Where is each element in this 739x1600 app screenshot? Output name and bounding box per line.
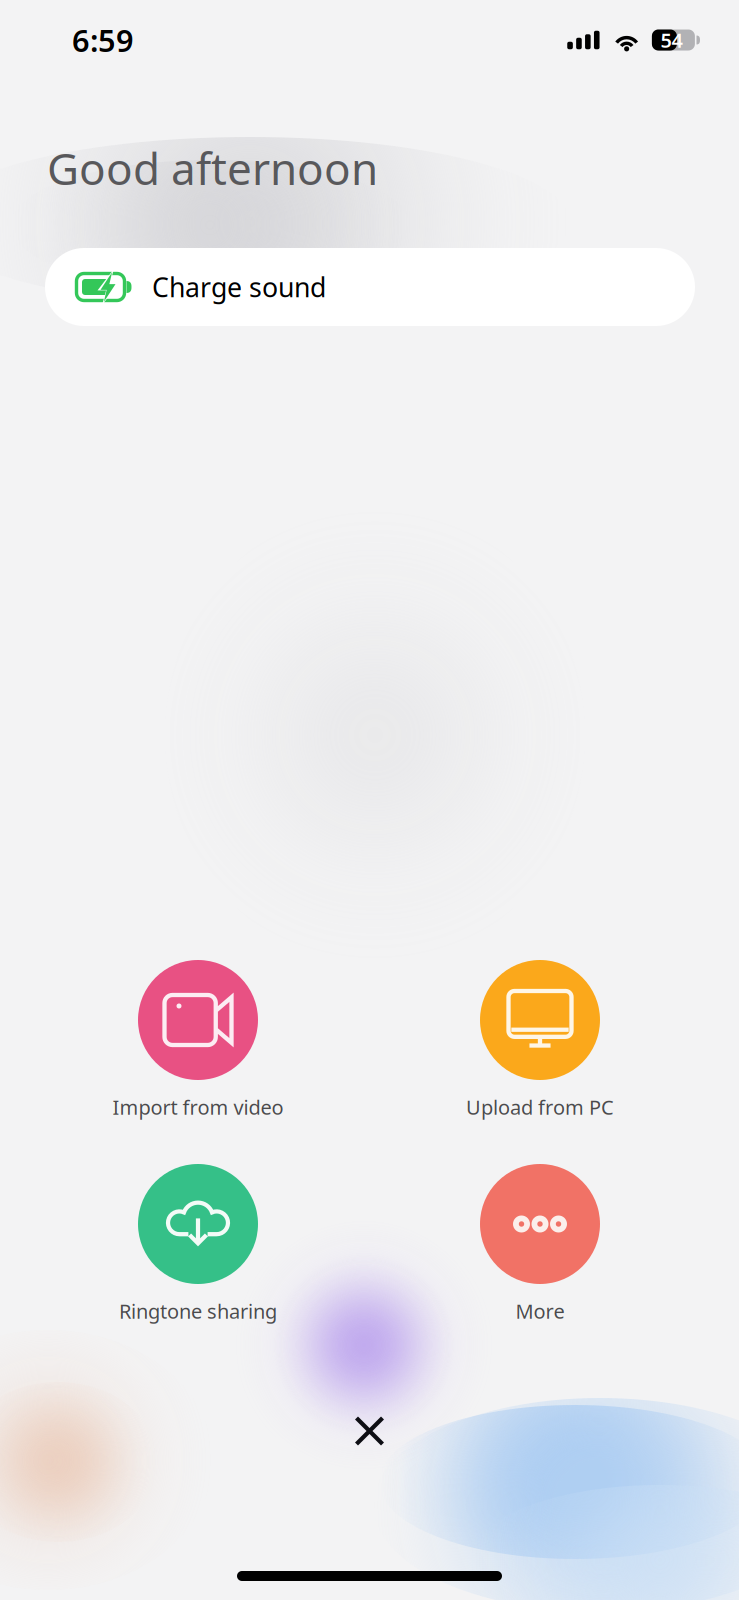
staticText: More bbox=[515, 1298, 564, 1324]
staticText: 6:59 bbox=[72, 20, 134, 60]
button[interactable]: Ringtone sharing bbox=[43, 1166, 353, 1324]
staticText: Upload from PC bbox=[466, 1094, 614, 1120]
staticText: Good afternoon bbox=[47, 139, 378, 197]
staticText: Import from video bbox=[112, 1094, 283, 1120]
button[interactable]: Import from video bbox=[43, 962, 353, 1120]
button[interactable]: Upload from PC bbox=[385, 962, 695, 1120]
button[interactable]: Close bbox=[330, 1392, 408, 1470]
button[interactable]: Charge sound bbox=[45, 248, 695, 326]
staticText: 54 bbox=[660, 27, 682, 53]
staticText: Charge sound bbox=[152, 269, 326, 305]
button[interactable]: More bbox=[385, 1166, 695, 1324]
staticText: Ringtone sharing bbox=[119, 1298, 277, 1324]
